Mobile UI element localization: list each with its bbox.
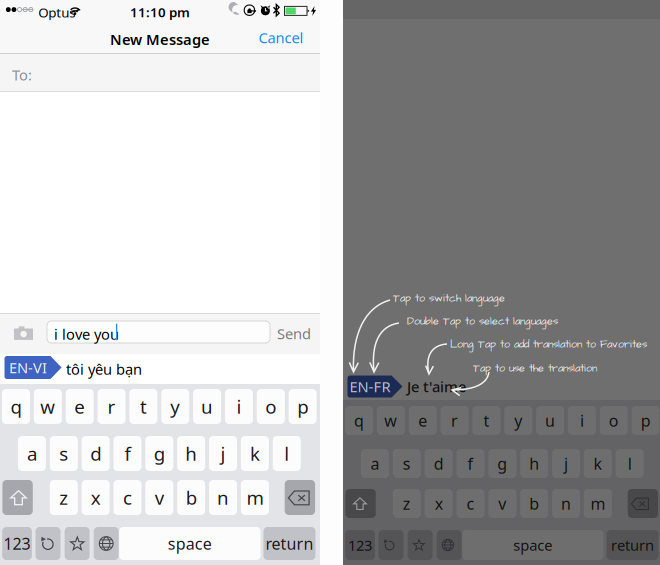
button[interactable]: b — [520, 489, 548, 518]
button[interactable]: Cancel — [254, 20, 308, 54]
staticText: 123 — [348, 535, 372, 555]
button[interactable]: m — [241, 480, 269, 515]
staticText: s — [59, 441, 68, 466]
button[interactable]: z — [393, 489, 421, 518]
button[interactable]: o — [257, 389, 285, 424]
button[interactable]: t — [472, 406, 500, 435]
button[interactable]: Shift — [345, 489, 376, 518]
button[interactable]: i — [225, 389, 253, 424]
staticText: n — [217, 485, 229, 510]
staticText: v — [155, 485, 164, 510]
button[interactable]: EN-VI — [4, 356, 61, 379]
button[interactable]: w — [34, 389, 62, 424]
button[interactable]: o — [600, 406, 628, 435]
button[interactable]: Delete — [285, 480, 315, 515]
button[interactable]: l — [273, 436, 301, 471]
button[interactable]: Favorites — [65, 527, 90, 560]
button[interactable]: space — [462, 530, 603, 560]
button[interactable]: r — [441, 406, 469, 435]
button[interactable]: z — [50, 480, 78, 515]
staticText: o — [265, 394, 276, 419]
button[interactable]: w — [377, 406, 405, 435]
staticText: t — [483, 410, 489, 431]
staticText: l — [628, 453, 632, 474]
button[interactable]: Next keyboard — [94, 527, 119, 560]
button[interactable]: r — [98, 389, 126, 424]
button[interactable]: q — [2, 389, 30, 424]
button[interactable]: f — [113, 436, 141, 471]
button[interactable]: q — [345, 406, 373, 435]
button[interactable]: c — [456, 489, 484, 518]
button[interactable]: Undo — [35, 527, 60, 560]
staticText: f — [124, 441, 130, 466]
staticText: g — [154, 441, 165, 466]
button[interactable]: Send — [272, 313, 316, 354]
button[interactable]: EN-FR — [347, 375, 402, 397]
button[interactable]: m — [584, 489, 612, 518]
staticText: o — [609, 410, 619, 431]
button[interactable]: a — [361, 449, 389, 478]
button[interactable]: t — [129, 389, 157, 424]
button[interactable]: e — [409, 406, 437, 435]
staticText: v — [498, 493, 506, 514]
staticText: q — [354, 410, 364, 431]
staticText: h — [529, 453, 539, 474]
button[interactable]: p — [632, 406, 660, 435]
button[interactable]: f — [456, 449, 484, 478]
button[interactable]: 123 — [2, 527, 32, 560]
button[interactable]: Favorites — [408, 530, 433, 560]
button[interactable]: b — [177, 480, 205, 515]
button[interactable]: return — [606, 530, 658, 560]
button[interactable]: v — [145, 480, 173, 515]
staticText: tôi yêu bạn — [66, 359, 142, 379]
button[interactable]: l — [616, 449, 644, 478]
button[interactable]: i — [568, 406, 596, 435]
staticText: x — [435, 493, 443, 514]
button[interactable]: 123 — [345, 530, 375, 560]
button[interactable]: Undo — [378, 530, 403, 560]
button[interactable]: h — [177, 436, 205, 471]
button[interactable]: return — [263, 527, 315, 560]
button[interactable]: x — [425, 489, 453, 518]
button[interactable]: h — [520, 449, 548, 478]
staticText: c — [466, 493, 474, 514]
staticText: Tap to switch language — [393, 291, 505, 306]
button[interactable]: space — [119, 527, 260, 560]
button[interactable]: p — [289, 389, 317, 424]
button[interactable]: tôi yêu bạn — [66, 356, 216, 382]
button[interactable]: j — [209, 436, 237, 471]
button[interactable]: j — [552, 449, 580, 478]
staticText: To: — [12, 65, 32, 84]
button[interactable]: s — [393, 449, 421, 478]
button[interactable]: Next keyboard — [437, 530, 462, 560]
button[interactable]: d — [425, 449, 453, 478]
staticText: Tap to use the translation — [473, 361, 597, 376]
button[interactable]: d — [82, 436, 110, 471]
staticText: w — [40, 394, 55, 419]
button[interactable]: g — [488, 449, 516, 478]
button[interactable]: Camera — [4, 313, 44, 354]
staticText: Optus — [38, 3, 75, 21]
button[interactable]: e — [66, 389, 94, 424]
button[interactable]: g — [145, 436, 173, 471]
button[interactable]: u — [193, 389, 221, 424]
button[interactable]: u — [536, 406, 564, 435]
button[interactable]: s — [50, 436, 78, 471]
button[interactable]: n — [552, 489, 580, 518]
button[interactable]: Delete — [628, 489, 658, 518]
button[interactable]: Je t'aime — [407, 375, 527, 397]
button[interactable]: Shift — [2, 480, 33, 515]
staticText: d — [90, 441, 101, 466]
button[interactable]: v — [488, 489, 516, 518]
button[interactable]: x — [82, 480, 110, 515]
staticText: e — [74, 394, 85, 419]
button[interactable]: n — [209, 480, 237, 515]
button[interactable]: y — [504, 406, 532, 435]
staticText: b — [186, 485, 197, 510]
button[interactable]: c — [113, 480, 141, 515]
staticText: p — [641, 410, 651, 431]
button[interactable]: y — [161, 389, 189, 424]
button[interactable]: k — [584, 449, 612, 478]
button[interactable]: a — [18, 436, 46, 471]
button[interactable]: k — [241, 436, 269, 471]
